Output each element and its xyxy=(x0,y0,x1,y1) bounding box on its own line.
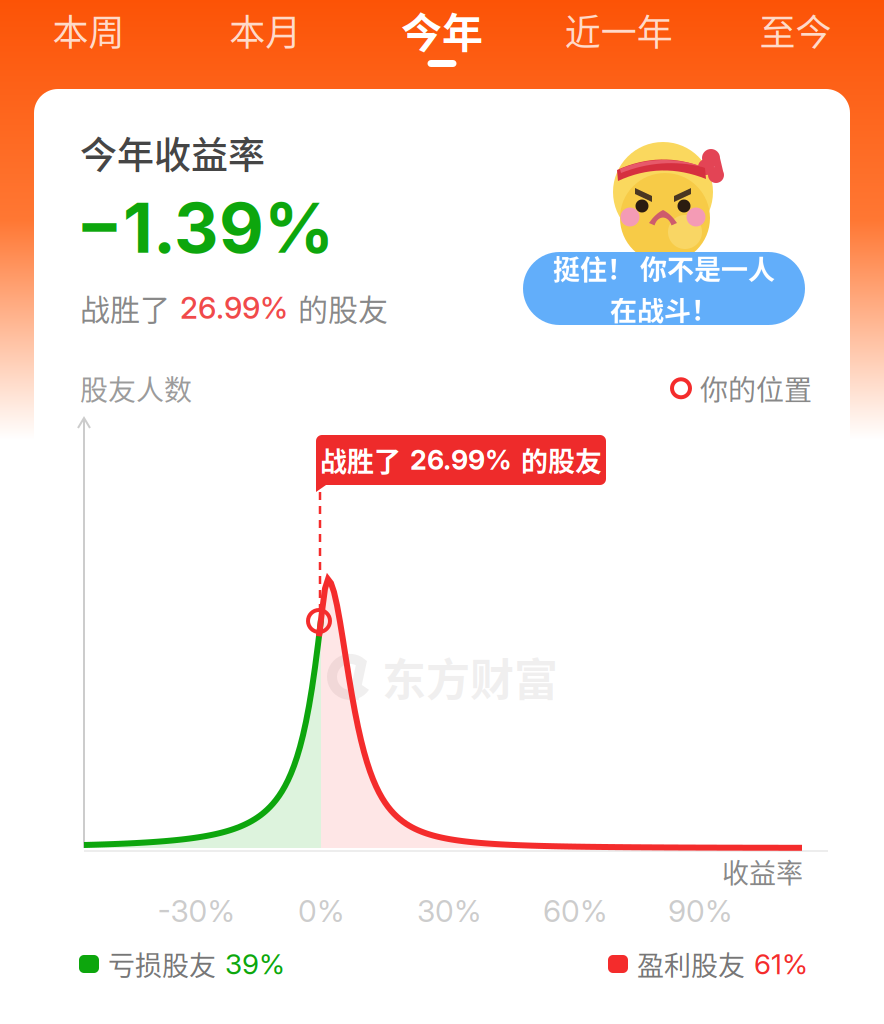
staticText: 26.99% xyxy=(410,444,512,476)
staticText: 在战斗！ xyxy=(610,289,718,329)
staticText: 的股友 xyxy=(521,440,602,480)
button[interactable]: 盈利股友 xyxy=(608,947,808,981)
button[interactable]: 本月 xyxy=(177,0,354,89)
button[interactable]: 至今 xyxy=(707,0,884,89)
staticText: −1.39% xyxy=(76,186,334,269)
staticText: 的股友 xyxy=(298,286,388,329)
staticText: 东方财富 xyxy=(382,645,558,709)
staticText: -30% xyxy=(157,893,234,929)
staticText: 39% xyxy=(225,947,285,981)
staticText: 战胜了 xyxy=(320,440,401,480)
staticText: 90% xyxy=(668,893,732,929)
staticText: 挺住！ 你不是一人 xyxy=(553,248,775,287)
staticText: 今年收益率 xyxy=(80,126,265,180)
staticText: 本周 xyxy=(52,4,124,56)
staticText: 61% xyxy=(754,947,808,981)
staticText: 60% xyxy=(543,893,607,929)
staticText: 30% xyxy=(417,893,481,929)
button[interactable]: 本周 xyxy=(0,0,177,89)
staticText: 亏损股友 xyxy=(108,944,216,984)
staticText: 今年 xyxy=(401,0,483,60)
staticText: 本月 xyxy=(229,4,301,56)
staticText: 盈利股友 xyxy=(637,944,745,984)
staticText: 你的位置 xyxy=(700,368,812,408)
button[interactable]: 近一年 xyxy=(530,0,707,89)
staticText: 战胜了 xyxy=(80,286,170,329)
staticText: 26.99% xyxy=(180,290,288,326)
staticText: 近一年 xyxy=(565,4,673,56)
staticText: 至今 xyxy=(760,4,832,56)
button[interactable]: 今年 xyxy=(354,0,530,89)
button[interactable]: 亏损股友 xyxy=(79,947,285,981)
staticText: 股友人数 xyxy=(80,368,192,408)
staticText: 0% xyxy=(298,893,344,929)
staticText: 收益率 xyxy=(722,852,803,891)
